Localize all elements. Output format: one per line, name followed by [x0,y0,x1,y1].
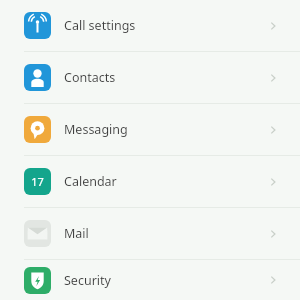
other: Open Security [258,265,288,295]
staticText: 17 [31,174,44,189]
button[interactable]: Call settings [0,0,300,51]
other: Open Call settings [258,11,288,41]
button[interactable]: Messaging [0,104,300,155]
staticText: Call settings [64,17,136,34]
other: Open Contacts [258,63,288,93]
staticText: Contacts [64,69,116,86]
button[interactable]: 17 [0,156,300,207]
staticText: Messaging [64,121,128,138]
other: Open Messaging [258,115,288,145]
other: Open Calendar [258,167,288,197]
staticText: Calendar [64,173,117,190]
staticText: Mail [64,225,89,242]
staticText: Security [64,272,111,289]
button[interactable]: Contacts [0,52,300,103]
button[interactable]: Mail [0,208,300,259]
button[interactable]: Security [0,260,300,300]
other: Open Mail [258,219,288,249]
